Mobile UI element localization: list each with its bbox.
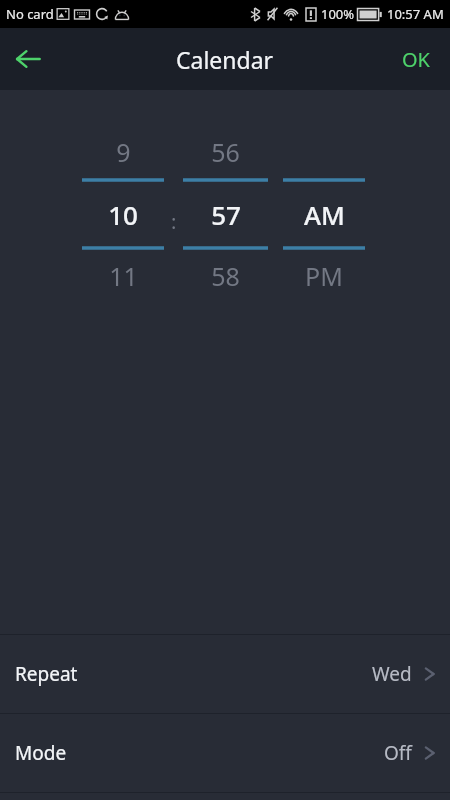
button[interactable]: AM [283,126,365,302]
staticText: PM [305,259,343,293]
button[interactable]: Mode [0,714,450,792]
staticText: 100% [321,5,355,23]
staticText: 56 [211,135,240,169]
staticText: 9 [116,135,131,169]
staticText: Wed [372,661,412,687]
staticText: 11 [109,259,138,293]
staticText: Mode [15,740,67,766]
staticText: No card [6,5,54,23]
button[interactable]: 9 [82,126,164,302]
button[interactable]: Repeat [0,635,450,713]
staticText: OK [402,46,430,73]
staticText: 10:57 AM [387,5,444,23]
button[interactable]: 56 [183,126,268,302]
staticText: : [171,208,177,235]
staticText: Off [384,740,412,766]
staticText: 57 [211,197,241,232]
button[interactable]: Back [0,31,56,87]
button[interactable]: OK [382,28,450,90]
staticText: Calendar [176,44,274,75]
staticText: AM [304,197,345,232]
staticText: Repeat [15,661,78,687]
staticText: 10 [108,197,138,232]
staticText: 58 [211,259,240,293]
